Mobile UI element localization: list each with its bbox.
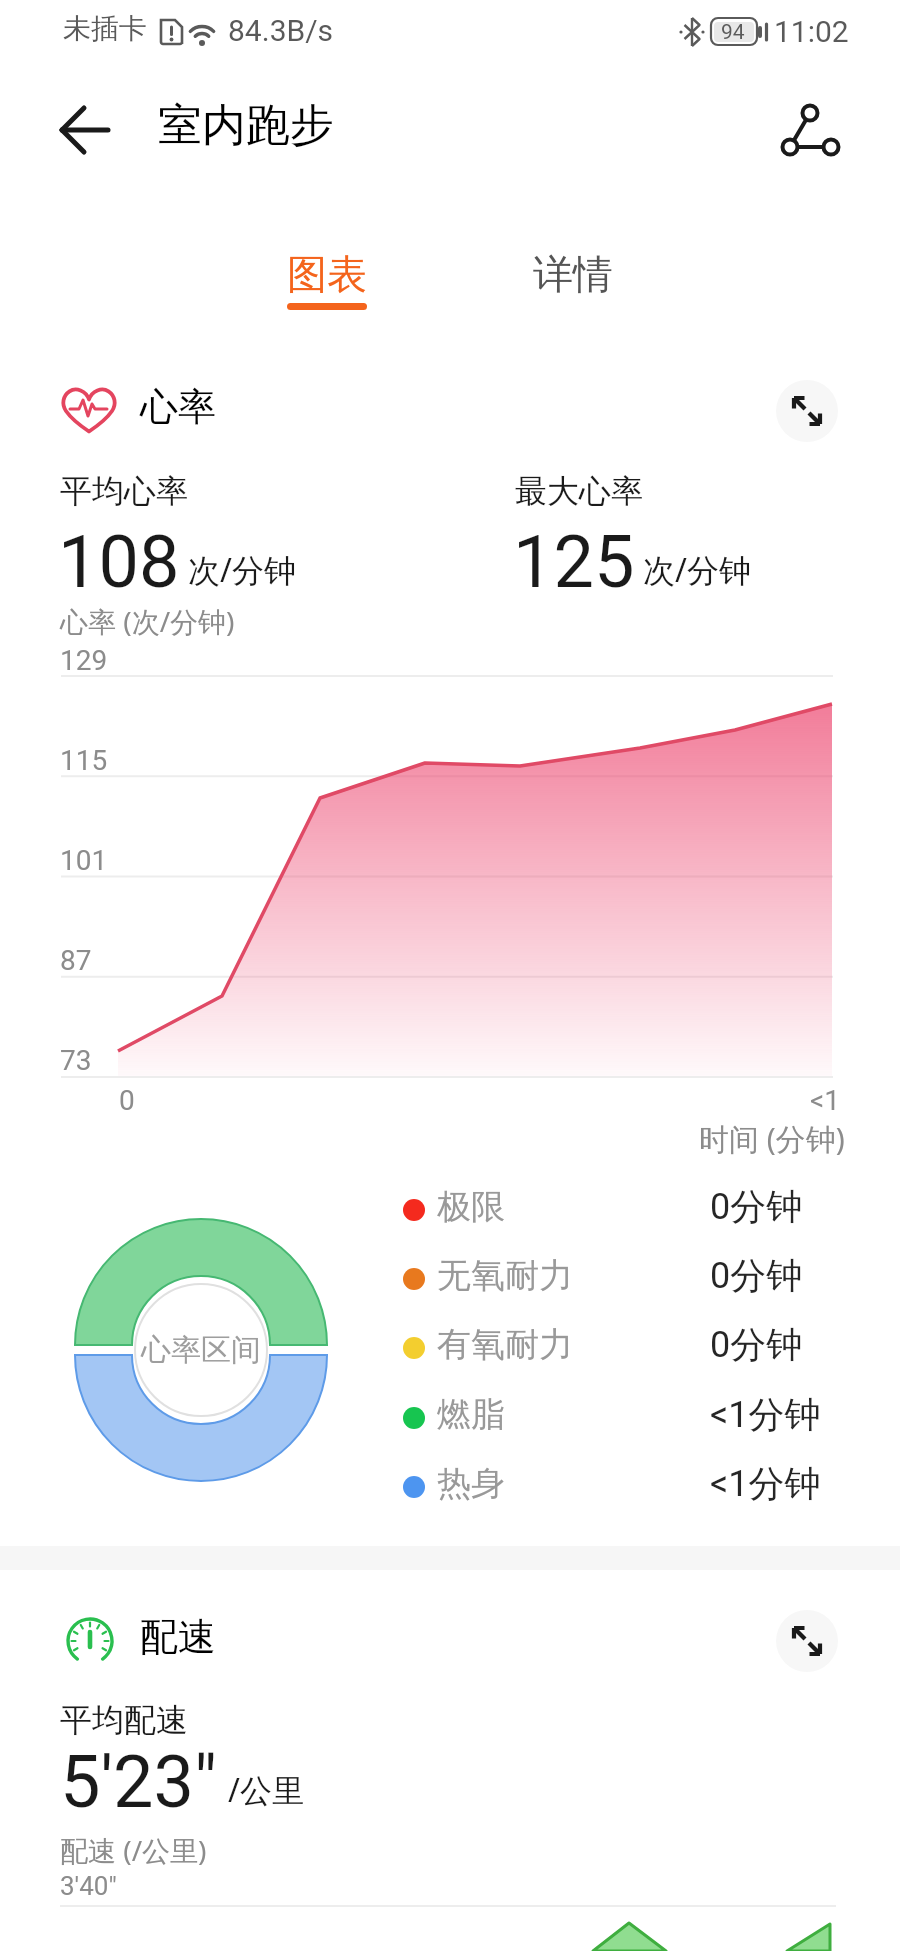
staticText: /公里 — [228, 1768, 304, 1812]
staticText: 有氧耐力 — [437, 1323, 573, 1366]
staticText: 5'23" — [60, 1740, 218, 1824]
staticText: 94 — [721, 20, 745, 45]
staticText: 时间 (分钟) — [699, 1118, 845, 1159]
staticText: 热身 — [437, 1462, 505, 1505]
staticText: 详情 — [533, 249, 613, 299]
staticText: 0分钟 — [710, 1253, 803, 1298]
staticText: 极限 — [437, 1185, 505, 1228]
button[interactable] — [775, 98, 841, 164]
staticText: 73 — [60, 1044, 92, 1077]
staticText: 室内跑步 — [158, 98, 334, 153]
staticText: <1 — [810, 1084, 840, 1117]
staticText: 心率区间 — [141, 1331, 261, 1369]
button[interactable]: 图表 — [252, 238, 402, 310]
staticText: 心率 — [140, 383, 216, 431]
staticText: 心率 (次/分钟) — [60, 602, 235, 640]
staticText: 未插卡 — [63, 11, 147, 46]
staticText: 次/分钟 — [643, 548, 751, 592]
staticText: 87 — [60, 944, 92, 977]
staticText: 84.3B/s — [228, 13, 334, 48]
staticText: 11:02 — [774, 14, 849, 49]
staticText: 燃脂 — [437, 1393, 505, 1436]
staticText: 3'40" — [60, 1871, 117, 1901]
staticText: 次/分钟 — [188, 548, 296, 592]
staticText: 101 — [60, 844, 108, 877]
button[interactable] — [776, 380, 838, 442]
button[interactable] — [776, 1610, 838, 1672]
staticText: <1分钟 — [710, 1392, 821, 1437]
staticText: 108 — [58, 520, 180, 604]
staticText: 平均配速 — [60, 1700, 188, 1740]
staticText: 0 — [119, 1084, 135, 1117]
staticText: 129 — [60, 644, 108, 677]
button[interactable] — [52, 98, 116, 162]
staticText: 配速 — [140, 1613, 216, 1661]
staticText: 125 — [513, 520, 635, 604]
staticText: 图表 — [287, 249, 367, 299]
staticText: 0分钟 — [710, 1184, 803, 1229]
staticText: 平均心率 — [60, 471, 188, 511]
staticText: <1分钟 — [710, 1461, 821, 1506]
staticText: 115 — [60, 744, 108, 777]
staticText: 配速 (/公里) — [60, 1831, 207, 1869]
staticText: 无氧耐力 — [437, 1254, 573, 1297]
staticText: 最大心率 — [515, 471, 643, 511]
button[interactable]: 详情 — [498, 238, 648, 310]
staticText: 0分钟 — [710, 1322, 803, 1367]
